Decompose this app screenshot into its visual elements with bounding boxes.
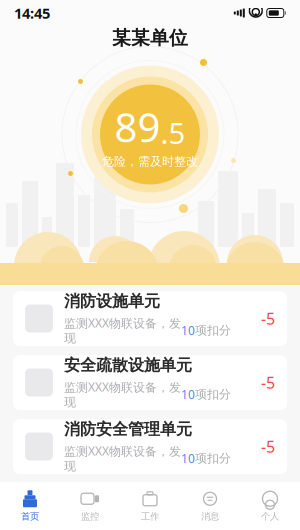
staticText: 某某单位 <box>112 26 188 49</box>
staticText: 消防设施单元 <box>64 291 160 311</box>
staticText: -5 <box>261 436 275 457</box>
button[interactable]: 个人 <box>240 482 300 530</box>
staticText: 监测XXX物联设备，发现 <box>64 379 181 410</box>
staticText: 14:45 <box>14 3 50 23</box>
staticText: -5 <box>261 308 275 329</box>
staticText: 安全疏散设施单元 <box>64 355 192 375</box>
button[interactable]: 监控 <box>60 482 120 530</box>
button[interactable]: 消防安全管理单元 <box>13 419 287 474</box>
staticText: 消息 <box>201 511 219 522</box>
staticText: 项扣分 <box>195 387 231 402</box>
button[interactable]: 安全疏散设施单元 <box>13 355 287 410</box>
staticText: 89 <box>114 100 160 153</box>
staticText: 危险，需及时整改 <box>102 154 198 169</box>
staticText: 监测XXX物联设备，发现 <box>64 443 181 474</box>
staticText: 项扣分 <box>195 323 231 338</box>
staticText: 10 <box>181 322 195 338</box>
staticText: 10 <box>181 450 195 466</box>
button[interactable]: 消息 <box>180 482 240 530</box>
staticText: 10 <box>181 386 195 402</box>
staticText: 监测XXX物联设备，发现 <box>64 315 181 346</box>
staticText: 个人 <box>261 511 279 522</box>
staticText: -5 <box>261 372 275 393</box>
staticText: 首页 <box>21 511 39 522</box>
staticText: .5 <box>160 113 185 152</box>
button[interactable]: 首页 <box>0 482 60 530</box>
button[interactable]: 工作 <box>120 482 180 530</box>
staticText: 项扣分 <box>195 451 231 466</box>
button[interactable]: 消防设施单元 <box>13 291 287 346</box>
staticText: 监控 <box>81 511 99 522</box>
staticText: 消防安全管理单元 <box>64 419 192 439</box>
staticText: 工作 <box>141 511 159 522</box>
